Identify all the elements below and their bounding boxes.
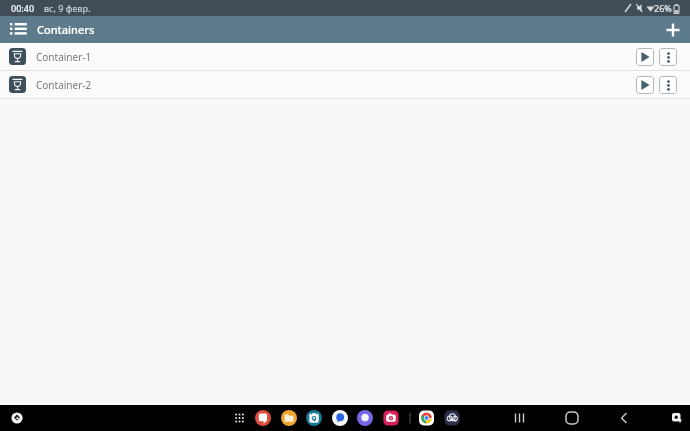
button[interactable] <box>0 405 34 431</box>
staticText: Containers <box>37 22 95 37</box>
button[interactable] <box>659 48 677 66</box>
staticText: 00:40 <box>11 2 35 14</box>
staticText: Container-2 <box>36 78 92 92</box>
staticText: Container-1 <box>36 50 92 64</box>
staticText: вс, 9 февр. <box>44 2 91 14</box>
button[interactable]: Container-2 <box>0 71 690 99</box>
button[interactable] <box>590 405 630 431</box>
button[interactable] <box>636 48 654 66</box>
button[interactable] <box>0 16 36 43</box>
button[interactable] <box>636 76 654 94</box>
button[interactable]: Container-1 <box>0 43 690 71</box>
staticText: 26% <box>654 2 672 14</box>
button[interactable] <box>550 405 590 431</box>
button[interactable] <box>656 16 690 43</box>
button[interactable] <box>659 76 677 94</box>
